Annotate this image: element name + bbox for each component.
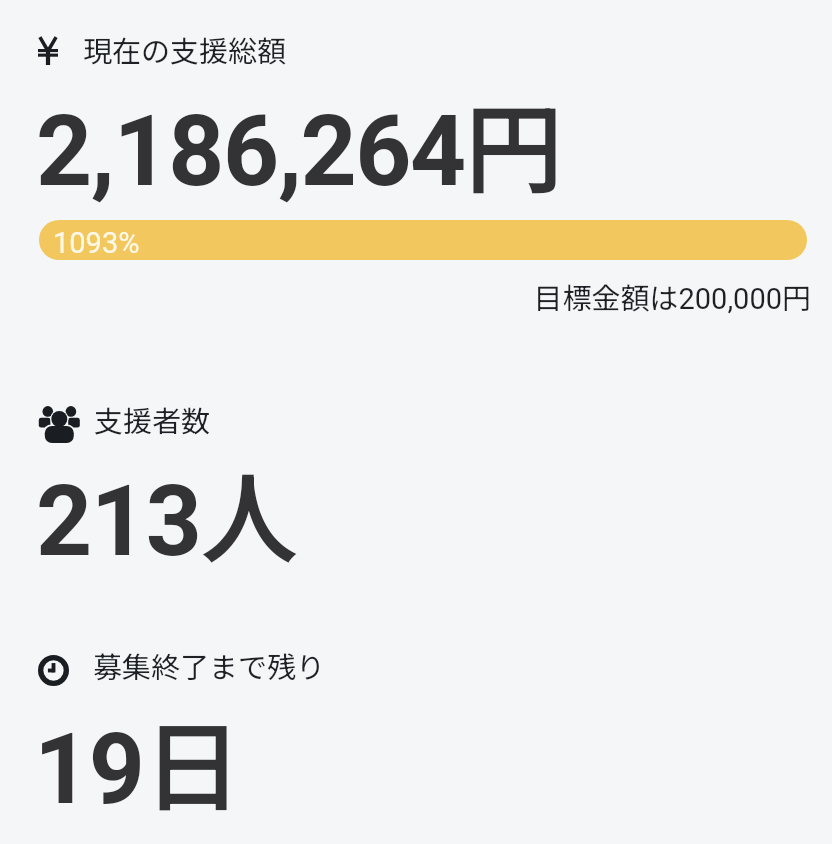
button[interactable]: Backers bbox=[0, 386, 832, 582]
button[interactable]: 1093% bbox=[39, 220, 807, 260]
other: Backers bbox=[38, 403, 80, 442]
staticText: 1093% bbox=[53, 226, 140, 260]
staticText: 募集終了まで残り bbox=[93, 644, 326, 686]
staticText: 19日 bbox=[34, 689, 241, 831]
other: Time remaining bbox=[38, 655, 69, 686]
staticText: 支援者数 bbox=[94, 398, 211, 440]
button[interactable]: Time remaining bbox=[0, 634, 832, 844]
staticText: 現在の支援総額 bbox=[83, 28, 287, 70]
other: Amount pledged bbox=[38, 36, 58, 65]
staticText: 目標金額は200,000円 bbox=[0, 275, 811, 317]
staticText: 2,186,264円 bbox=[36, 71, 562, 213]
button[interactable]: Amount pledged bbox=[0, 14, 832, 314]
staticText: 213人 bbox=[36, 441, 298, 583]
